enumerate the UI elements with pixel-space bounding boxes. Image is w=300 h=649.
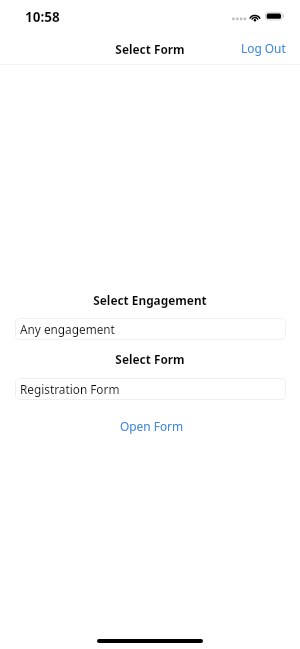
staticText: Select Form: [0, 351, 300, 367]
staticText: Log Out: [241, 40, 286, 56]
staticText: Select Form: [0, 41, 300, 57]
button[interactable]: Any engagement: [15, 318, 286, 340]
other: Wi-Fi: [248, 11, 262, 22]
other: Cellular signal: [231, 16, 246, 23]
button[interactable]: Registration Form: [15, 378, 286, 400]
staticText: Open Form: [120, 418, 184, 434]
button[interactable]: Open Form: [112, 413, 192, 439]
staticText: Registration Form: [20, 381, 120, 397]
button[interactable]: Log Out: [232, 34, 295, 62]
other: Battery full: [265, 11, 284, 21]
staticText: Any engagement: [20, 321, 115, 337]
staticText: Select Engagement: [0, 292, 300, 308]
staticText: 10:58: [25, 8, 60, 26]
